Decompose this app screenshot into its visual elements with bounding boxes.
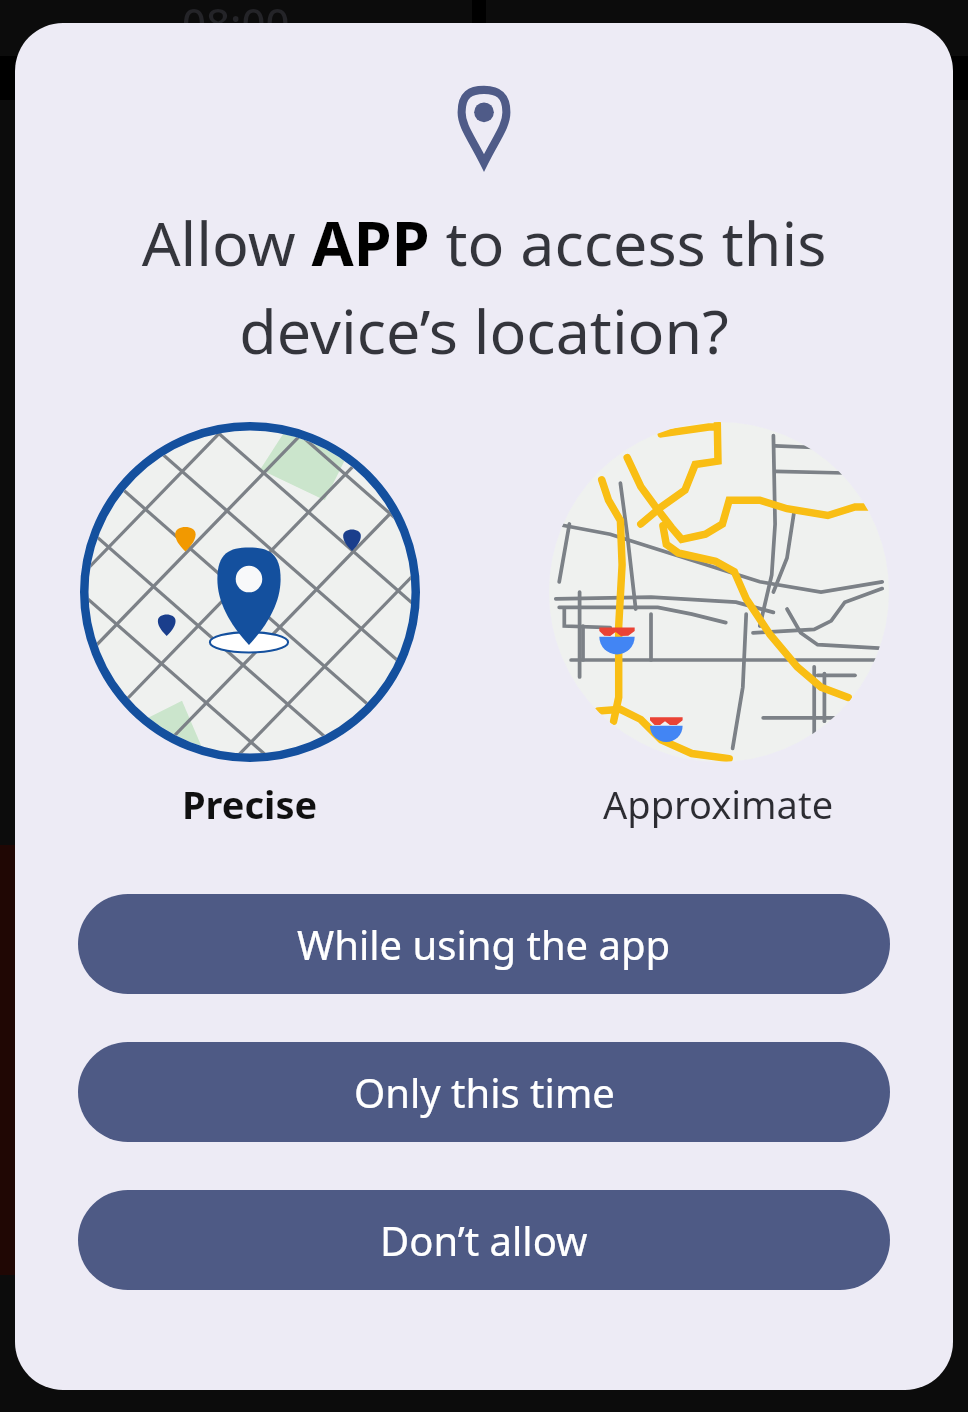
button[interactable]: Approximate location [549, 422, 889, 762]
staticText: 08:00 [182, 0, 290, 51]
button[interactable]: Don’t allow [78, 1190, 890, 1290]
staticText: Only this time [354, 1065, 615, 1119]
button[interactable]: Only this time [78, 1042, 890, 1142]
staticText: Approximate [603, 778, 834, 830]
staticText: While using the app [297, 917, 671, 971]
button[interactable]: While using the app [78, 894, 890, 994]
staticText: Don’t allow [380, 1213, 588, 1267]
staticText: Precise [182, 778, 318, 830]
staticText: Allow APP to access this device’s locati… [61, 201, 907, 372]
button[interactable]: Precise location [80, 422, 420, 762]
